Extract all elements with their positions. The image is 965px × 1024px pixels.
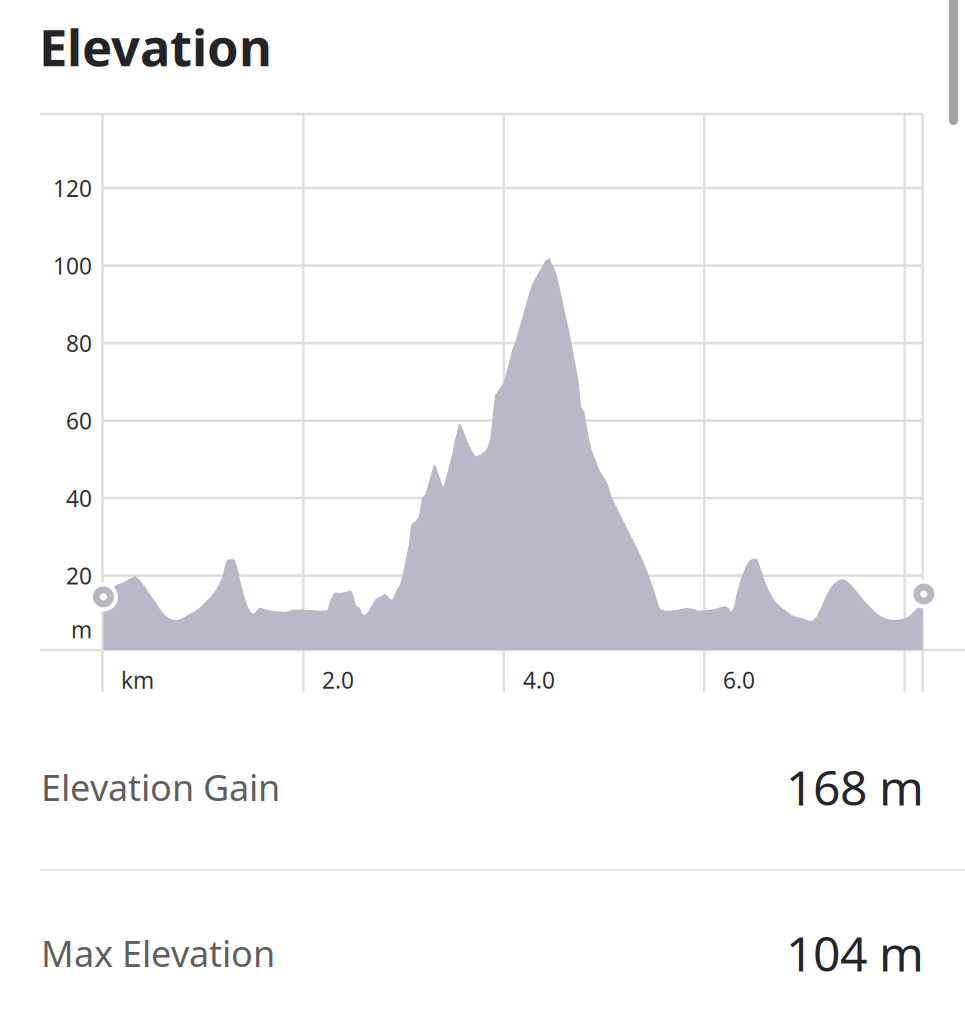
staticText: 6.0 [723, 665, 755, 695]
staticText: 104 m [786, 921, 924, 985]
staticText: 168 m [786, 755, 924, 819]
staticText: 120 [53, 173, 92, 203]
staticText: 4.0 [523, 665, 555, 695]
button[interactable]: Max Elevation [0, 870, 965, 1024]
staticText: Elevation [39, 13, 272, 80]
staticText: 40 [66, 483, 92, 513]
staticText: 80 [66, 328, 92, 358]
staticText: km [121, 665, 154, 695]
staticText: 2.0 [322, 665, 354, 695]
staticText: Max Elevation [41, 929, 275, 977]
button[interactable]: Elevation Gain [0, 704, 965, 870]
staticText: 60 [66, 405, 92, 436]
staticText: m [71, 614, 92, 644]
staticText: Elevation Gain [41, 763, 280, 811]
staticText: 100 [53, 250, 92, 281]
staticText: 20 [66, 560, 92, 591]
